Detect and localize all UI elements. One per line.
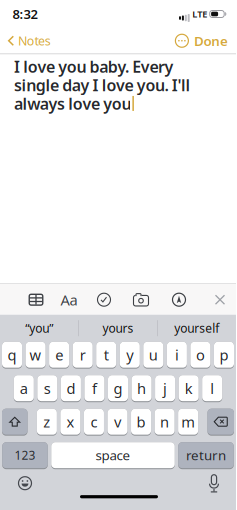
button[interactable]: p: [214, 342, 234, 369]
button[interactable]: u: [143, 342, 163, 369]
button[interactable]: j: [155, 375, 175, 402]
button[interactable]: Format: [60, 290, 77, 309]
staticText: z: [43, 412, 50, 431]
button[interactable]: Delete: [207, 409, 234, 436]
button[interactable]: 123: [2, 442, 48, 469]
button[interactable]: Emoji: [18, 476, 32, 490]
button[interactable]: x: [60, 409, 80, 436]
staticText: s: [44, 378, 51, 398]
staticText: o: [196, 345, 205, 364]
staticText: j: [163, 378, 167, 398]
staticText: Notes: [18, 32, 51, 49]
button[interactable]: n: [155, 409, 175, 436]
staticText: u: [149, 345, 158, 364]
button[interactable]: Close: [215, 295, 224, 304]
staticText: yourself: [174, 320, 219, 336]
staticText: always love you: [14, 93, 131, 114]
staticText: g: [113, 378, 122, 398]
staticText: return: [186, 446, 226, 464]
staticText: i: [175, 345, 179, 364]
staticText: single day I love you. I'll: [14, 74, 191, 95]
button[interactable]: Checklist: [97, 293, 111, 307]
staticText: 8:32: [12, 5, 37, 23]
button[interactable]: return: [178, 442, 234, 469]
button[interactable]: e: [49, 342, 69, 369]
button[interactable]: c: [84, 409, 104, 436]
button[interactable]: Markup: [172, 293, 186, 307]
staticText: y: [126, 345, 133, 364]
button[interactable]: h: [131, 375, 152, 402]
button[interactable]: g: [108, 375, 128, 402]
staticText: p: [219, 345, 228, 364]
staticText: space: [95, 446, 130, 464]
button[interactable]: y: [120, 342, 140, 369]
staticText: m: [181, 412, 195, 431]
button[interactable]: a: [14, 375, 34, 402]
staticText: n: [160, 412, 169, 431]
staticText: r: [80, 345, 86, 364]
staticText: k: [185, 378, 193, 398]
button[interactable]: Insert table: [28, 293, 43, 306]
staticText: x: [66, 412, 74, 431]
button[interactable]: d: [61, 375, 81, 402]
button[interactable]: Shift: [2, 409, 27, 436]
button[interactable]: v: [107, 409, 128, 436]
button[interactable]: s: [37, 375, 57, 402]
staticText: “you”: [25, 320, 53, 336]
button[interactable]: i: [167, 342, 187, 369]
staticText: e: [55, 345, 63, 364]
staticText: a: [20, 378, 28, 398]
button[interactable]: r: [73, 342, 93, 369]
button[interactable]: b: [131, 409, 151, 436]
staticText: q: [7, 345, 16, 364]
staticText: yours: [102, 320, 133, 336]
button[interactable]: q: [2, 342, 22, 369]
button[interactable]: t: [96, 342, 116, 369]
staticText: t: [104, 345, 109, 364]
button[interactable]: w: [26, 342, 46, 369]
button[interactable]: m: [178, 409, 198, 436]
staticText: LTE: [192, 8, 207, 20]
staticText: d: [66, 378, 75, 398]
staticText: v: [114, 412, 121, 431]
button[interactable]: l: [202, 375, 222, 402]
button[interactable]: k: [179, 375, 199, 402]
staticText: Aa: [60, 290, 77, 309]
button[interactable]: Back to Notes: [0, 32, 51, 49]
staticText: 123: [14, 447, 35, 463]
button[interactable]: Camera: [132, 293, 149, 307]
button[interactable]: o: [190, 342, 210, 369]
staticText: h: [137, 378, 146, 398]
staticText: f: [92, 378, 97, 398]
button[interactable]: yourself: [158, 315, 236, 342]
staticText: l: [210, 378, 214, 398]
button[interactable]: f: [84, 375, 104, 402]
staticText: b: [137, 412, 146, 431]
button[interactable]: “you”: [0, 315, 78, 342]
button[interactable]: yours: [79, 315, 157, 342]
button[interactable]: z: [37, 409, 57, 436]
staticText: I love you baby. Every: [14, 56, 174, 77]
button[interactable]: Dictate: [208, 474, 220, 493]
staticText: w: [30, 345, 42, 364]
staticText: Done: [194, 32, 228, 50]
button[interactable]: More: [175, 34, 189, 48]
button[interactable]: space: [51, 442, 175, 469]
staticText: c: [90, 412, 97, 431]
button[interactable]: Done: [194, 32, 228, 50]
